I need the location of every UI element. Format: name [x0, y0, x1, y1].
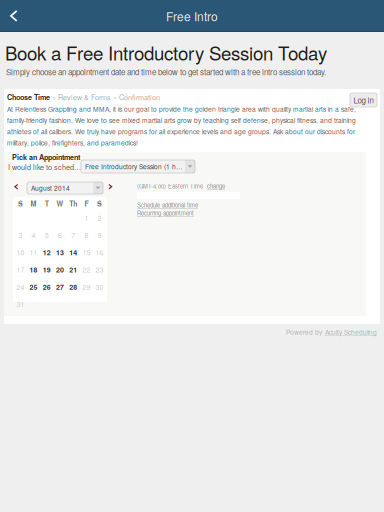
staticText: 7 [71, 230, 75, 240]
staticText: S [18, 198, 23, 208]
button[interactable]: Next month [106, 181, 115, 193]
staticText: F [84, 198, 88, 208]
staticText: 11 [30, 247, 38, 257]
staticText: 26 [43, 282, 51, 292]
staticText: Acuity Scheduling [325, 327, 377, 336]
staticText: 3 [18, 230, 22, 240]
button[interactable]: Schedule additional time [137, 201, 198, 209]
staticText: Recurring appointment [137, 209, 194, 217]
staticText: 10 [16, 247, 24, 257]
button[interactable]: Back [0, 0, 28, 31]
staticText: S [97, 198, 102, 208]
staticText: 30 [96, 282, 104, 292]
staticText: 18 [30, 264, 38, 275]
button[interactable]: change [207, 182, 225, 190]
staticText: 1 [84, 213, 88, 223]
staticText: Confirmation [119, 92, 160, 102]
staticText: 2 [98, 213, 102, 223]
staticText: I would like to schedule [8, 162, 82, 172]
staticText: 9 [98, 230, 102, 240]
staticText: 31 [16, 299, 24, 309]
button[interactable]: Free Introductory Session (1 hour) [81, 160, 195, 173]
staticText: 5 [45, 230, 49, 240]
staticText: 22 [82, 264, 90, 275]
staticText: Schedule additional time [137, 201, 198, 209]
staticText: 16 [96, 247, 104, 257]
staticText: 14 [69, 247, 77, 257]
staticText: 4 [32, 230, 36, 240]
button[interactable]: Review & Forms [58, 92, 111, 102]
staticText: 23 [96, 264, 104, 275]
staticText: August 2014 [31, 183, 70, 193]
staticText: 21 [69, 264, 77, 275]
staticText: 24 [16, 282, 24, 292]
staticText: Book a Free Introductory Session Today [5, 39, 327, 66]
staticText: 25 [30, 282, 38, 292]
staticText: 12 [43, 247, 51, 257]
button[interactable]: Log in [350, 93, 377, 107]
staticText: Free Intro [166, 7, 218, 25]
staticText: M [31, 198, 37, 208]
staticText: Review & Forms [58, 92, 111, 102]
staticText: Pick an Appointment [12, 152, 80, 162]
staticText: Log in [353, 94, 373, 106]
staticText: T [45, 198, 49, 208]
staticText: 15 [82, 247, 90, 257]
button[interactable]: August 2014 [27, 182, 103, 194]
staticText: Choose Time [7, 92, 50, 102]
staticText: 20 [56, 264, 64, 275]
staticText: » [50, 92, 58, 102]
staticText: 28 [69, 282, 77, 292]
staticText: Th [69, 198, 77, 208]
button[interactable]: Choose Time [7, 92, 50, 102]
button[interactable]: Recurring appointment [137, 209, 194, 217]
button[interactable]: Acuity Scheduling [325, 327, 377, 336]
staticText: 27 [56, 282, 64, 292]
staticText: Simply choose an appointment date and ti… [6, 66, 326, 77]
staticText: » [111, 92, 119, 102]
staticText: Powered by [286, 327, 322, 336]
staticText: Free Introductory Session (1 hour) [85, 162, 184, 171]
button[interactable]: Previous month [12, 181, 21, 193]
staticText: 19 [43, 264, 51, 275]
staticText: 6 [58, 230, 62, 240]
staticText: (GMT-4:00) Eastern Time [137, 182, 203, 190]
staticText: 29 [82, 282, 90, 292]
staticText: 17 [16, 264, 24, 275]
staticText: At Relentless Grappling and MMA, it is o… [7, 104, 356, 147]
staticText: 8 [84, 230, 88, 240]
staticText: W [56, 198, 63, 208]
staticText: change [207, 182, 225, 190]
staticText: 13 [56, 247, 64, 257]
